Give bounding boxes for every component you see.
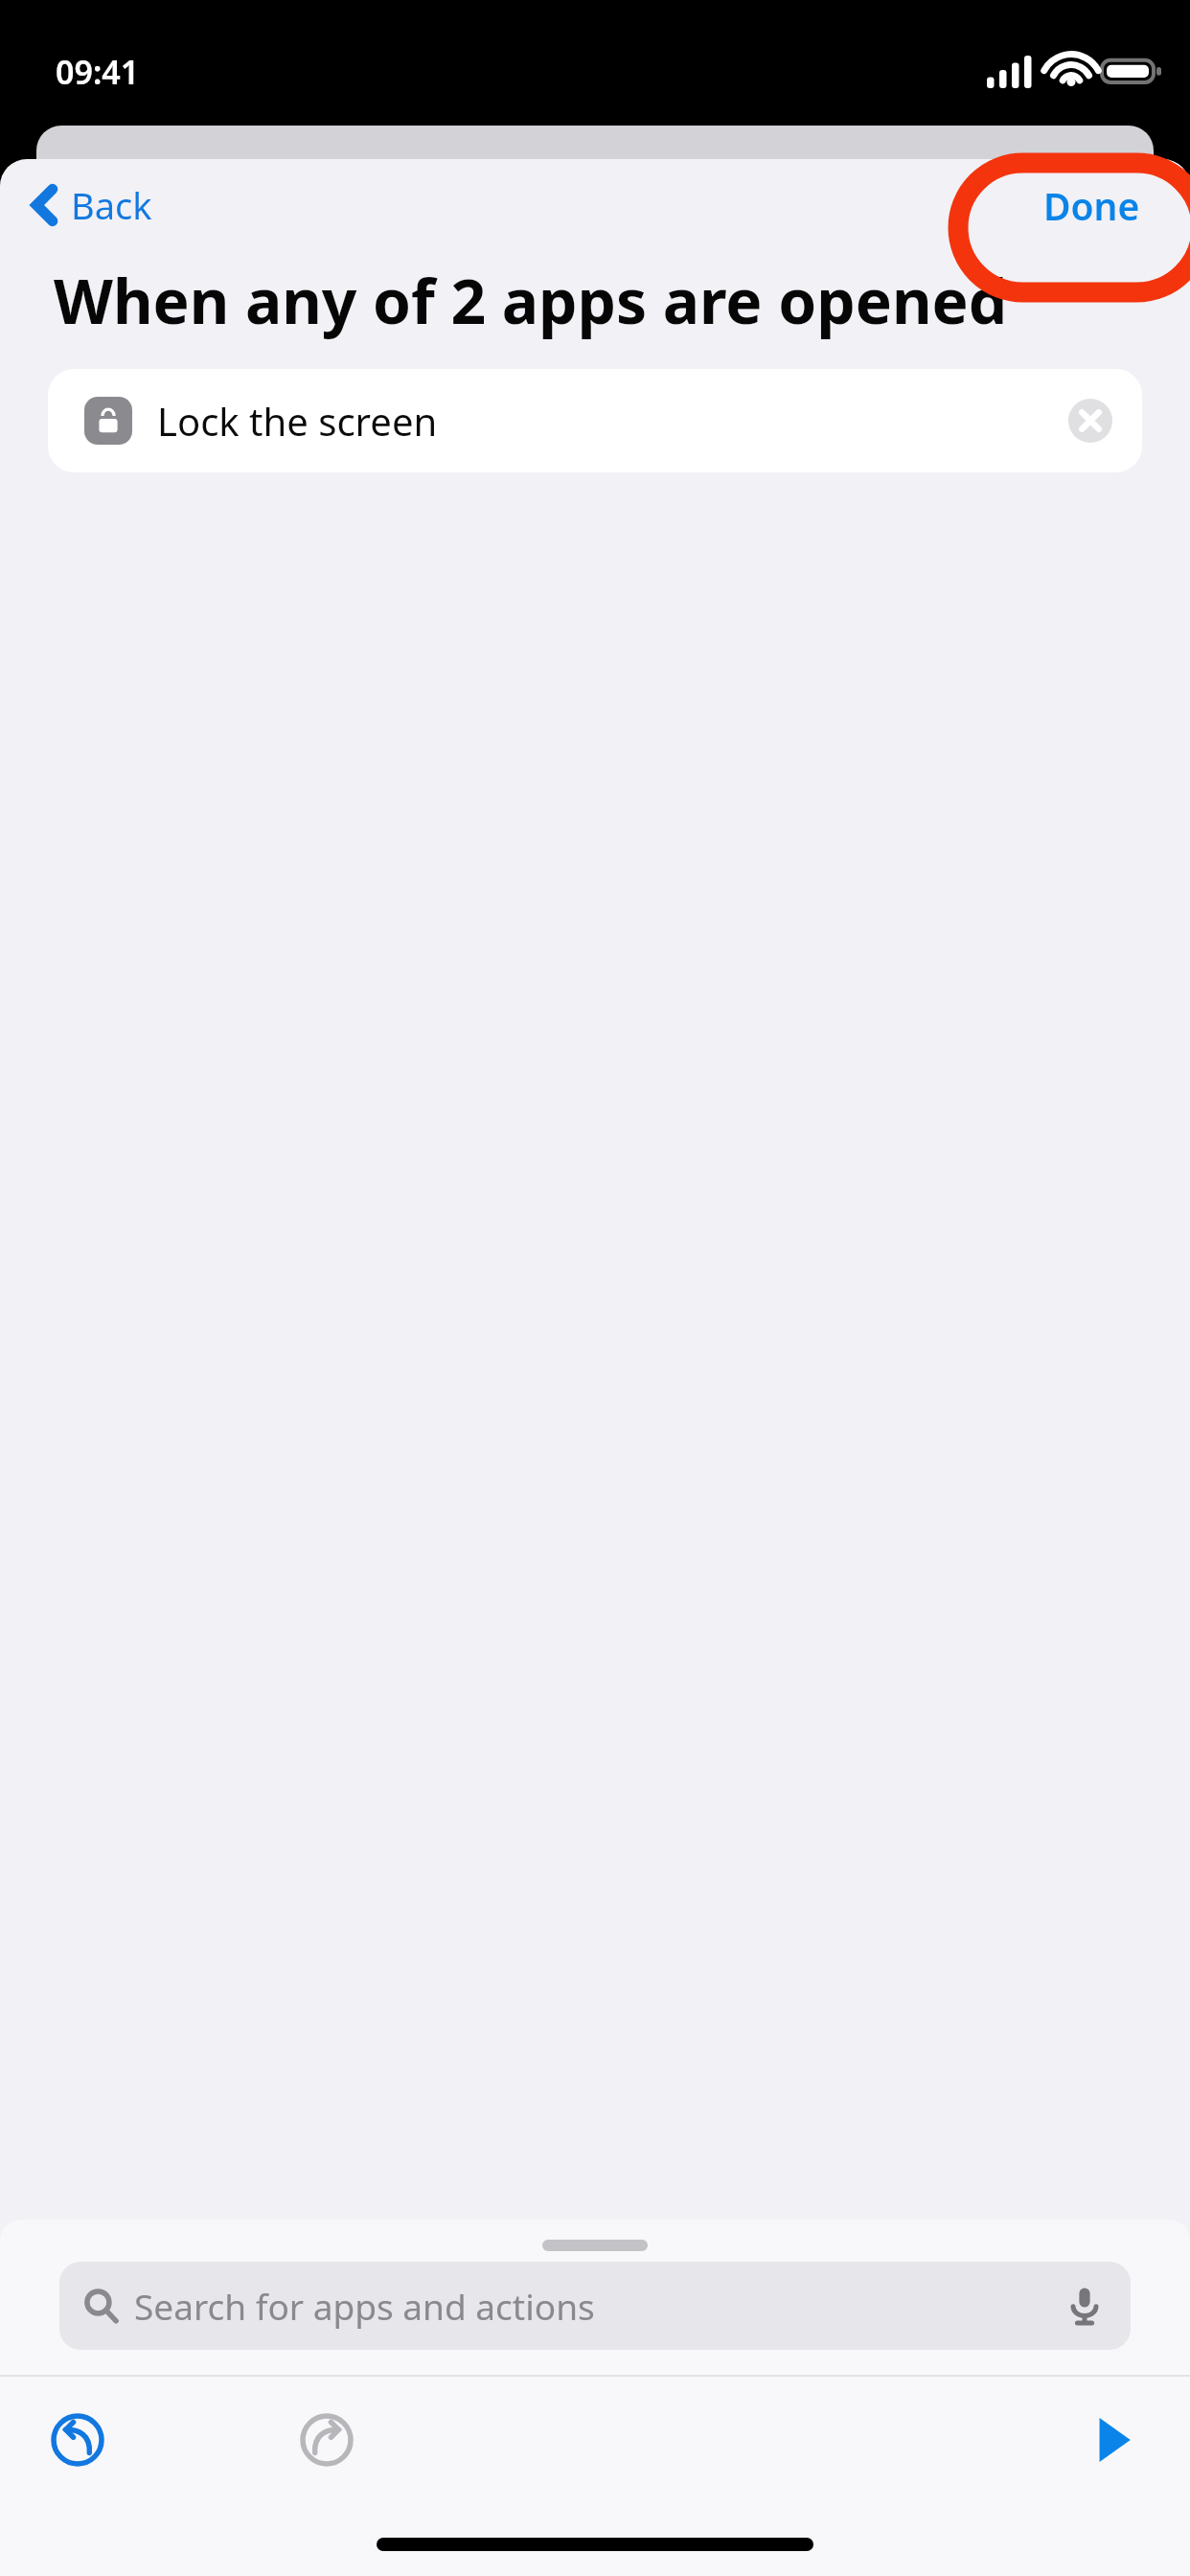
button[interactable]: Undo [40,2403,115,2477]
button[interactable]: Done [1032,172,1152,239]
staticText: Lock the screen [157,395,438,447]
staticText: Done [1043,180,1140,231]
staticText: Back [71,180,152,230]
button[interactable]: Remove action [1065,396,1115,446]
button[interactable]: Voice search [1062,2283,1108,2329]
button[interactable]: Redo [289,2403,364,2477]
button[interactable]: Back [23,172,162,238]
button[interactable]: Run shortcut [1073,2403,1148,2477]
staticText: Search for apps and actions [134,2282,595,2330]
staticText: 09:41 [56,50,140,94]
staticText: When any of 2 apps are opened [54,259,1075,342]
button[interactable]: Search for apps and actions [59,2262,1131,2350]
button[interactable]: Lock the screen [48,369,1142,472]
